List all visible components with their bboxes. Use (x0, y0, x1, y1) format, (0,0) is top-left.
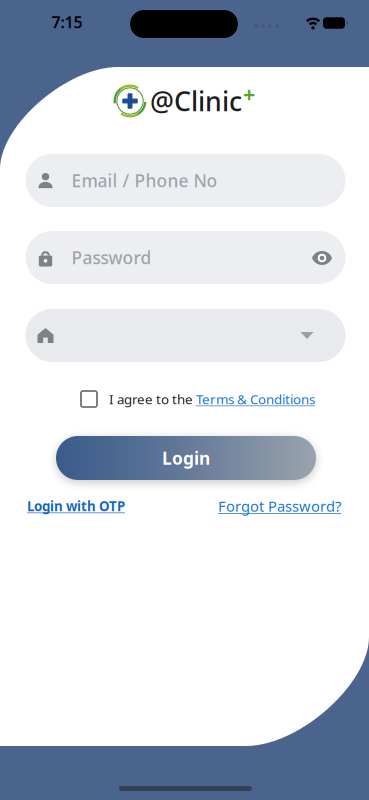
staticText: Terms & Conditions (196, 390, 315, 408)
staticText: Login (162, 446, 210, 469)
staticText: 7:15 (51, 11, 82, 33)
button[interactable]: Terms & Conditions (196, 390, 315, 408)
button[interactable]: Forgot Password? (218, 496, 341, 516)
staticText: Forgot Password? (218, 496, 341, 516)
staticText: I agree to the (109, 390, 196, 408)
button[interactable]: I agree to the Terms & Conditions (81, 391, 97, 407)
button[interactable]: Show password (304, 243, 340, 273)
staticText: Password (71, 246, 151, 269)
button[interactable]: Select clinic (25, 309, 345, 362)
staticText: Email / Phone No (71, 169, 217, 192)
button[interactable]: Login with OTP (27, 497, 125, 515)
staticText: @Clinic (150, 83, 242, 119)
staticText: + (243, 80, 255, 108)
button[interactable]: Password (25, 231, 345, 284)
button[interactable]: Email / Phone No (25, 154, 345, 207)
button[interactable]: Login (56, 436, 316, 480)
staticText: Login with OTP (27, 497, 125, 515)
